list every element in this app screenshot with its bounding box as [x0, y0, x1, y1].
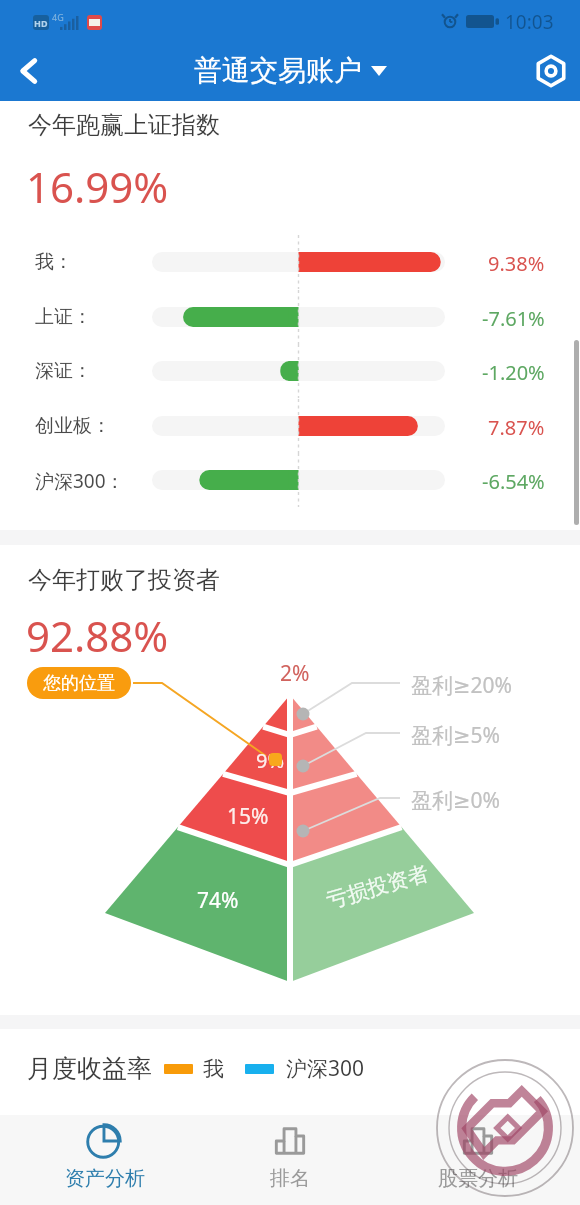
staticText: 今年跑赢上证指数: [28, 110, 220, 140]
button[interactable]: Back: [0, 42, 58, 100]
staticText: 4G: [52, 11, 64, 23]
staticText: 沪深300：: [35, 468, 125, 494]
staticText: 创业板：: [35, 414, 111, 438]
button[interactable]: 股票分析: [416, 1123, 540, 1205]
button[interactable]: 您的位置: [27, 667, 131, 699]
staticText: 9%: [256, 747, 285, 774]
staticText: 92.88%: [26, 607, 169, 664]
staticText: 9.38%: [488, 250, 545, 277]
staticText: 我：: [35, 250, 73, 274]
staticText: 盈利≥5%: [411, 721, 501, 750]
button[interactable]: 排名: [228, 1123, 352, 1205]
staticText: 盈利≥0%: [411, 786, 501, 815]
staticText: 7.87%: [488, 414, 545, 441]
staticText: 我: [203, 1056, 224, 1082]
staticText: 您的位置: [43, 672, 115, 695]
staticText: HD: [34, 17, 48, 29]
staticText: 资产分析: [65, 1166, 145, 1191]
staticText: 今年打败了投资者: [28, 565, 220, 595]
staticText: 15%: [227, 802, 269, 831]
staticText: 深证：: [35, 359, 92, 383]
staticText: 亏损投资者: [323, 860, 432, 914]
staticText: -6.54%: [482, 468, 545, 495]
staticText: 16.99%: [26, 158, 169, 215]
staticText: 盈利≥20%: [411, 671, 513, 700]
staticText: 74%: [197, 886, 239, 915]
button[interactable]: Settings: [522, 42, 580, 100]
staticText: 月度收益率: [27, 1053, 152, 1084]
button[interactable]: 资产分析: [43, 1123, 167, 1205]
staticText: 排名: [270, 1166, 310, 1191]
staticText: 10:03: [505, 9, 554, 35]
staticText: 沪深300: [286, 1054, 365, 1083]
button[interactable]: 普通交易账户: [194, 53, 387, 88]
staticText: 上证：: [35, 305, 92, 329]
staticText: -7.61%: [482, 305, 545, 332]
staticText: 2%: [280, 659, 310, 688]
staticText: 股票分析: [438, 1166, 518, 1191]
staticText: -1.20%: [482, 359, 545, 386]
staticText: 普通交易账户: [194, 53, 362, 88]
